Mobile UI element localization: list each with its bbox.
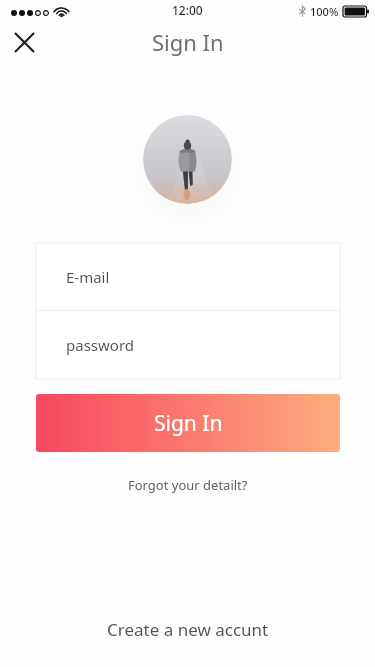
button[interactable]: password bbox=[36, 311, 340, 378]
button[interactable]: Profile photo bbox=[143, 115, 232, 204]
staticText: 12:00 bbox=[172, 2, 203, 18]
button[interactable]: Forgot your detailt? bbox=[118, 472, 258, 498]
staticText: Sign In bbox=[154, 409, 223, 438]
staticText: password bbox=[66, 335, 134, 355]
button[interactable]: Sign In bbox=[36, 394, 340, 452]
button[interactable]: E-mail bbox=[36, 243, 340, 310]
staticText: 100% bbox=[310, 4, 339, 19]
staticText: Sign In bbox=[152, 27, 224, 57]
staticText: Create a new accunt bbox=[107, 618, 269, 641]
staticText: E-mail bbox=[66, 267, 110, 287]
button[interactable]: Create a new accunt bbox=[93, 612, 283, 647]
staticText: Forgot your detailt? bbox=[128, 476, 248, 494]
button[interactable]: Close bbox=[4, 22, 44, 62]
